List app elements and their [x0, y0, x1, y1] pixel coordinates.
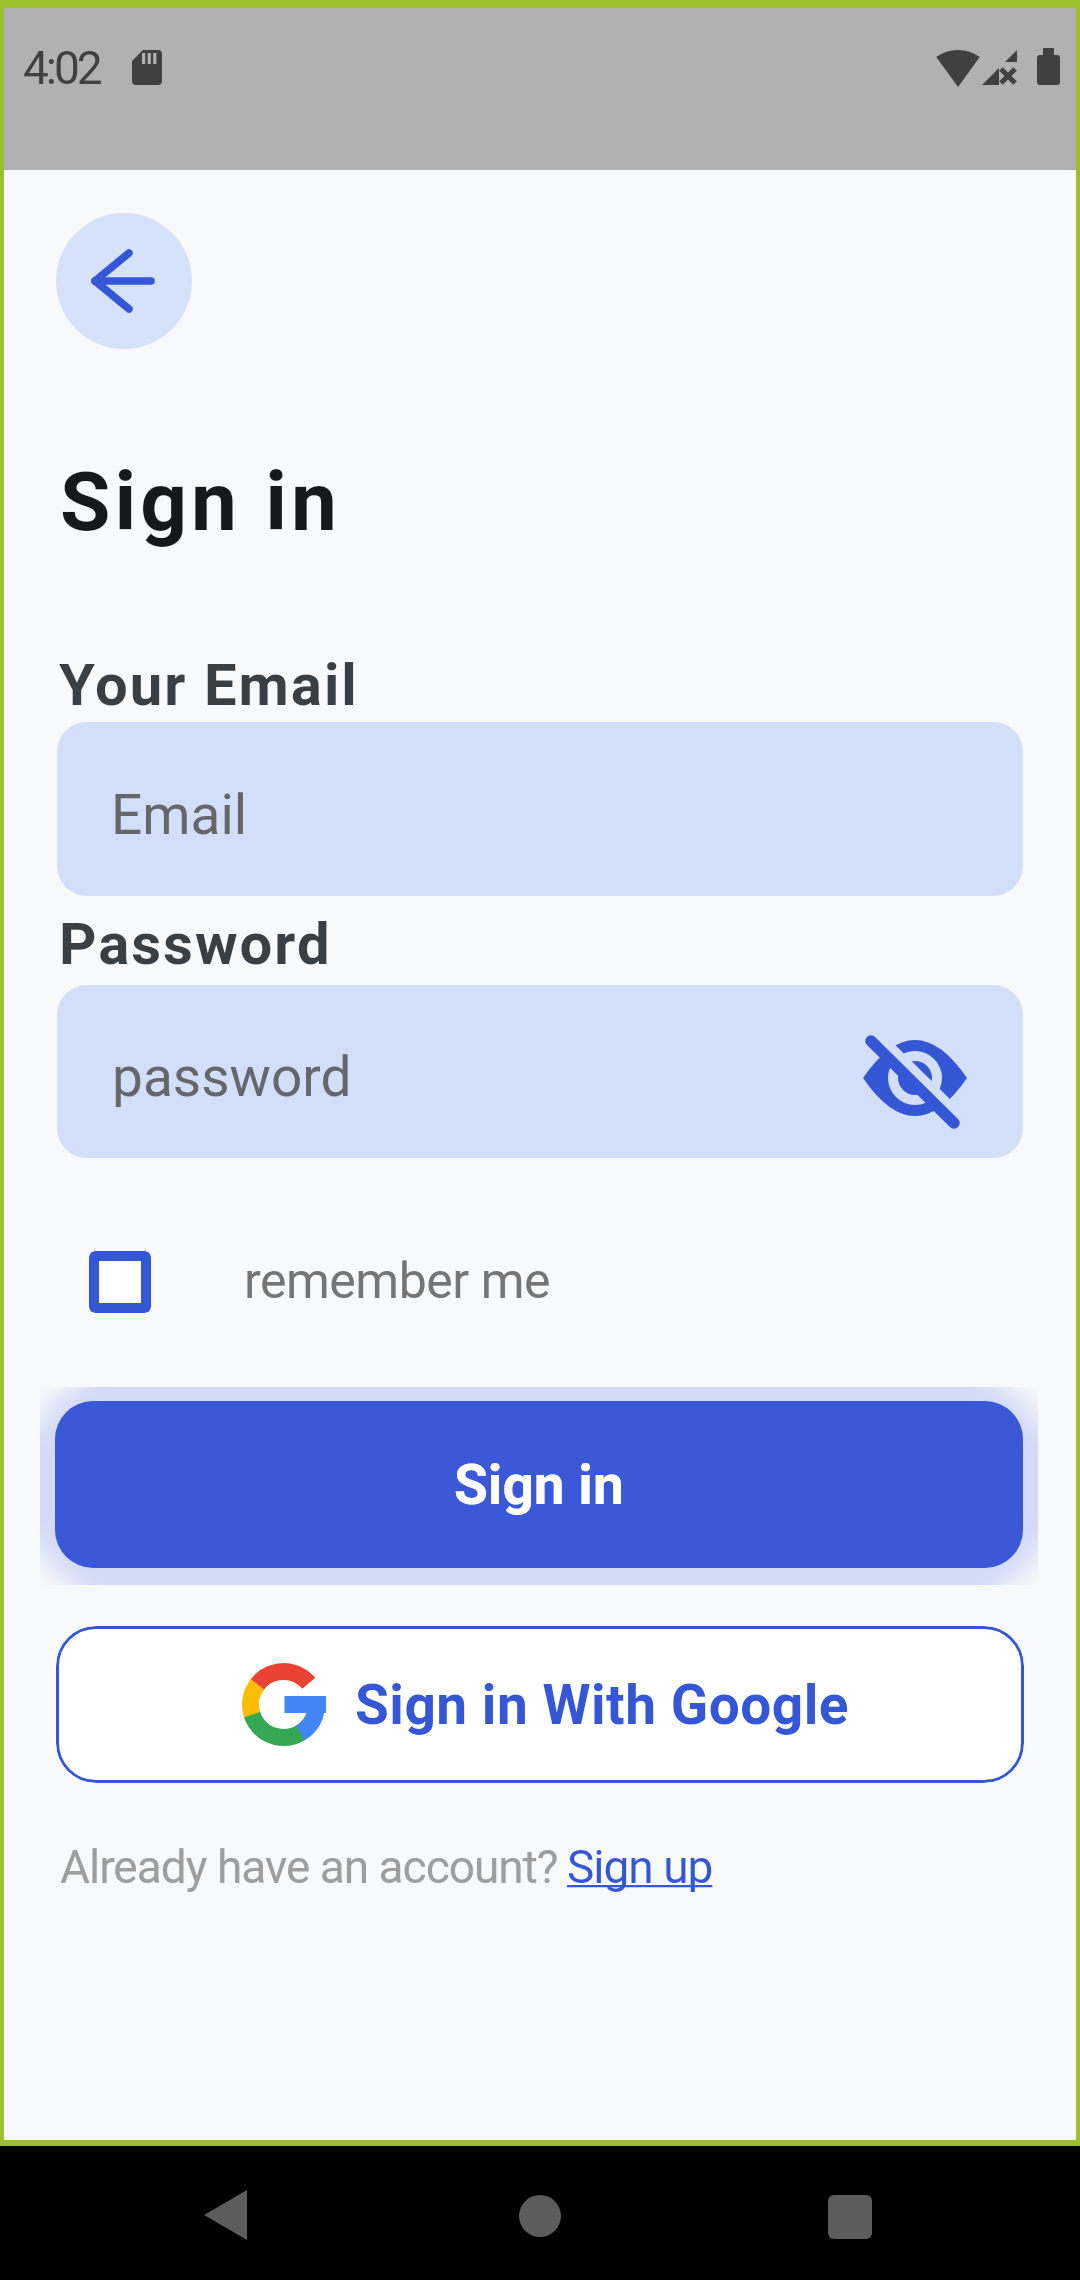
- staticText: Sign in: [454, 1453, 624, 1517]
- button[interactable]: Sign in With Google: [56, 1626, 1024, 1783]
- staticText: Already have an account?: [60, 1840, 558, 1894]
- button[interactable]: Sign up: [567, 1840, 713, 1894]
- button[interactable]: Email: [57, 722, 1023, 896]
- staticText: password: [112, 1045, 352, 1109]
- button[interactable]: [56, 213, 192, 349]
- staticText: Email: [111, 783, 248, 847]
- staticText: 4:02: [23, 41, 100, 95]
- staticText: Your Email: [59, 651, 359, 719]
- staticText: Sign in With Google: [355, 1673, 850, 1737]
- button[interactable]: password: [57, 985, 1023, 1158]
- staticText: remember me: [244, 1252, 550, 1311]
- button[interactable]: [89, 1251, 151, 1313]
- staticText: Sign in: [60, 454, 342, 550]
- staticText: Password: [59, 910, 332, 978]
- button[interactable]: Sign in: [55, 1401, 1023, 1568]
